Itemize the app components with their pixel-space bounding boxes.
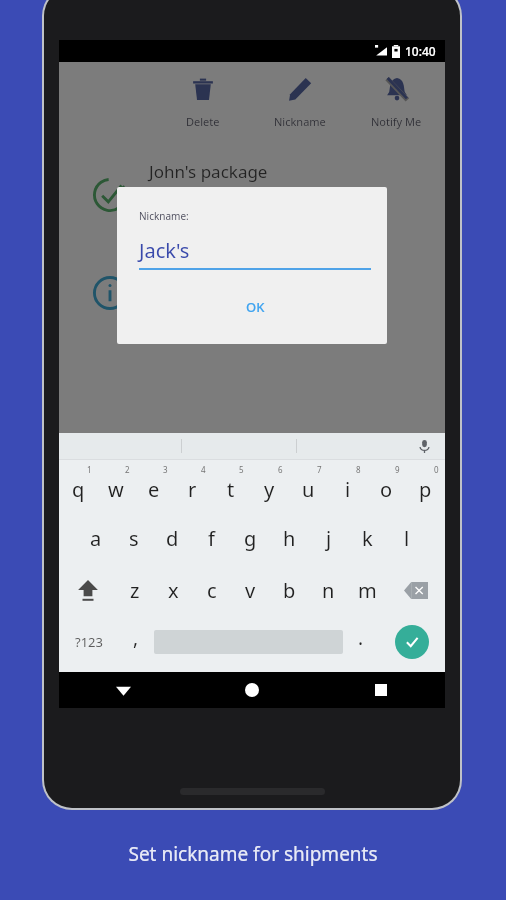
staticText: 7: [317, 464, 322, 475]
button[interactable]: 7: [289, 460, 328, 512]
staticText: Delete: [186, 114, 220, 129]
button[interactable]: n: [309, 564, 348, 616]
staticText: o: [380, 476, 393, 503]
staticText: z: [130, 577, 140, 604]
button[interactable]: Recents: [316, 672, 445, 708]
other: Delete: [190, 76, 216, 102]
button[interactable]: .: [343, 616, 379, 668]
staticText: a: [90, 525, 102, 552]
staticText: v: [245, 577, 256, 604]
button[interactable]: 0: [406, 460, 445, 512]
other: Voice input: [418, 440, 431, 453]
button[interactable]: g: [231, 512, 270, 564]
button[interactable]: ,: [118, 616, 154, 668]
button[interactable]: h: [270, 512, 309, 564]
other: Notify Me: [384, 76, 410, 102]
button[interactable]: Notify Me: [348, 62, 445, 150]
button[interactable]: Home: [187, 672, 316, 708]
staticText: t: [227, 476, 235, 503]
staticText: ?123: [75, 633, 103, 651]
button[interactable]: j: [309, 512, 348, 564]
staticText: Notify Me: [371, 114, 422, 129]
button[interactable]: c: [192, 564, 231, 616]
button[interactable]: 3: [135, 460, 173, 512]
staticText: OK: [246, 298, 265, 316]
button[interactable]: ?123: [59, 616, 118, 668]
staticText: e: [148, 476, 160, 503]
staticText: m: [358, 577, 377, 604]
staticText: 5: [239, 464, 244, 475]
staticText: s: [129, 525, 139, 552]
staticText: 1: [87, 464, 92, 475]
button[interactable]: 4: [173, 460, 211, 512]
staticText: k: [362, 525, 373, 552]
button[interactable]: d: [153, 512, 192, 564]
button[interactable]: m: [348, 564, 387, 616]
staticText: Jack's: [139, 237, 190, 264]
button[interactable]: s: [115, 512, 153, 564]
staticText: 4: [201, 464, 206, 475]
staticText: y: [264, 476, 275, 503]
staticText: p: [419, 476, 432, 503]
staticText: i: [345, 476, 351, 503]
staticText: 2: [125, 464, 130, 475]
button[interactable]: OK: [232, 292, 279, 322]
staticText: 6: [278, 464, 283, 475]
staticText: x: [168, 577, 179, 604]
staticText: f: [208, 525, 215, 552]
button[interactable]: 6: [250, 460, 289, 512]
staticText: d: [166, 525, 179, 552]
button[interactable]: 5: [211, 460, 250, 512]
staticText: b: [283, 577, 296, 604]
button[interactable]: 8: [328, 460, 367, 512]
staticText: n: [322, 577, 335, 604]
button[interactable]: a: [77, 512, 115, 564]
staticText: Set nickname for shipments: [128, 841, 378, 867]
button[interactable]: 2: [97, 460, 135, 512]
staticText: u: [302, 476, 315, 503]
button[interactable]: Delete: [155, 62, 251, 150]
button[interactable]: Nickname: [251, 62, 348, 150]
staticText: Nickname:: [139, 209, 189, 223]
button[interactable]: Backspace: [387, 564, 445, 616]
staticText: Nickname: [274, 114, 326, 129]
staticText: w: [108, 476, 124, 503]
button[interactable]: v: [231, 564, 270, 616]
button[interactable]: b: [270, 564, 309, 616]
button[interactable]: z: [116, 564, 154, 616]
staticText: 0: [434, 464, 439, 475]
staticText: h: [283, 525, 296, 552]
button[interactable]: 9: [367, 460, 406, 512]
button[interactable]: Back: [59, 672, 187, 708]
button[interactable]: 1: [59, 460, 97, 512]
staticText: .: [358, 625, 364, 651]
staticText: John's package: [149, 160, 268, 183]
staticText: 8: [356, 464, 361, 475]
staticText: 10:40: [405, 43, 436, 59]
button[interactable]: l: [387, 512, 426, 564]
staticText: l: [404, 525, 410, 552]
staticText: g: [244, 525, 257, 552]
staticText: 3: [163, 464, 168, 475]
staticText: c: [207, 577, 217, 604]
staticText: q: [72, 476, 85, 503]
button[interactable]: k: [348, 512, 387, 564]
button[interactable]: Shift: [59, 564, 116, 616]
button[interactable]: Enter: [395, 625, 429, 659]
staticText: j: [326, 525, 332, 552]
staticText: 9: [395, 464, 400, 475]
button[interactable]: x: [154, 564, 192, 616]
other: Nickname: [287, 76, 313, 102]
staticText: ,: [133, 625, 139, 651]
button[interactable]: f: [192, 512, 231, 564]
staticText: r: [188, 476, 197, 503]
